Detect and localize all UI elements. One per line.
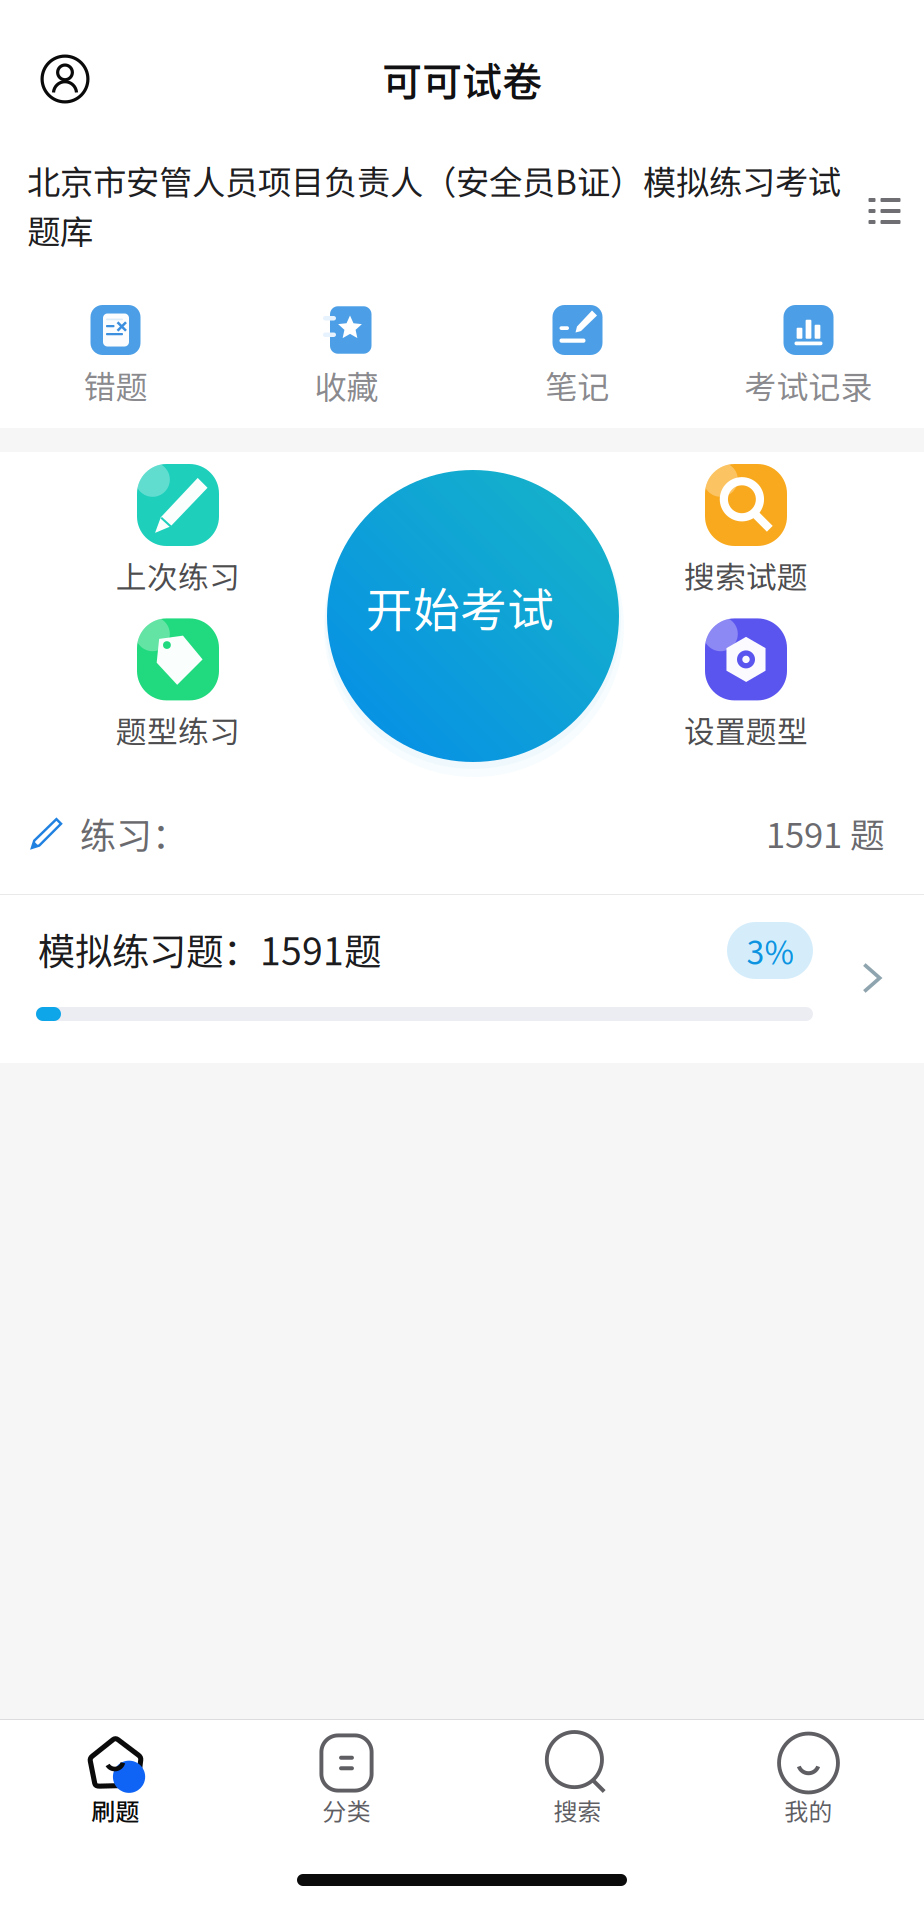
button[interactable]: 上次练习 bbox=[0, 464, 356, 597]
button[interactable]: 考试记录 bbox=[693, 268, 924, 428]
button[interactable]: 题库列表 bbox=[861, 180, 908, 242]
staticText: 可可试卷 bbox=[382, 50, 542, 108]
staticText: 笔记 bbox=[545, 362, 609, 408]
button[interactable]: 刷题 bbox=[0, 1720, 231, 1838]
staticText: 设置题型 bbox=[684, 707, 808, 752]
button[interactable]: 模拟练习题：1591题 bbox=[0, 895, 924, 1063]
button[interactable]: 收藏 bbox=[231, 268, 462, 428]
button[interactable]: 分类 bbox=[231, 1720, 462, 1838]
staticText: 考试记录 bbox=[744, 362, 872, 408]
button[interactable]: 设置题型 bbox=[568, 618, 924, 752]
button[interactable]: 题型练习 bbox=[0, 618, 356, 752]
staticText: 上次练习 bbox=[116, 553, 240, 597]
staticText: 模拟练习题：1591题 bbox=[38, 922, 381, 976]
button[interactable]: 个人中心 bbox=[25, 34, 105, 124]
staticText: 错题 bbox=[83, 362, 147, 408]
button[interactable]: 搜索试题 bbox=[568, 464, 924, 597]
staticText: 1591 题 bbox=[766, 808, 885, 858]
staticText: 收藏 bbox=[314, 362, 378, 408]
button[interactable]: 开始考试 bbox=[327, 470, 619, 762]
button[interactable]: 我的 bbox=[693, 1720, 924, 1838]
button[interactable]: 错题 bbox=[0, 268, 231, 428]
button[interactable]: 笔记 bbox=[462, 268, 693, 428]
staticText: 3% bbox=[746, 927, 793, 974]
staticText: 分类 bbox=[322, 1793, 370, 1827]
button[interactable]: 搜索 bbox=[462, 1720, 693, 1838]
staticText: 我的 bbox=[784, 1793, 832, 1827]
staticText: 练习： bbox=[80, 807, 188, 859]
staticText: 搜索 bbox=[553, 1793, 601, 1827]
staticText: 刷题 bbox=[91, 1793, 139, 1827]
staticText: 北京市安管人员项目负责人（安全员B证）模拟练习考试题库 bbox=[27, 156, 841, 253]
staticText: 搜索试题 bbox=[684, 553, 808, 597]
staticText: 题型练习 bbox=[116, 707, 240, 752]
staticText: 开始考试 bbox=[366, 573, 554, 641]
